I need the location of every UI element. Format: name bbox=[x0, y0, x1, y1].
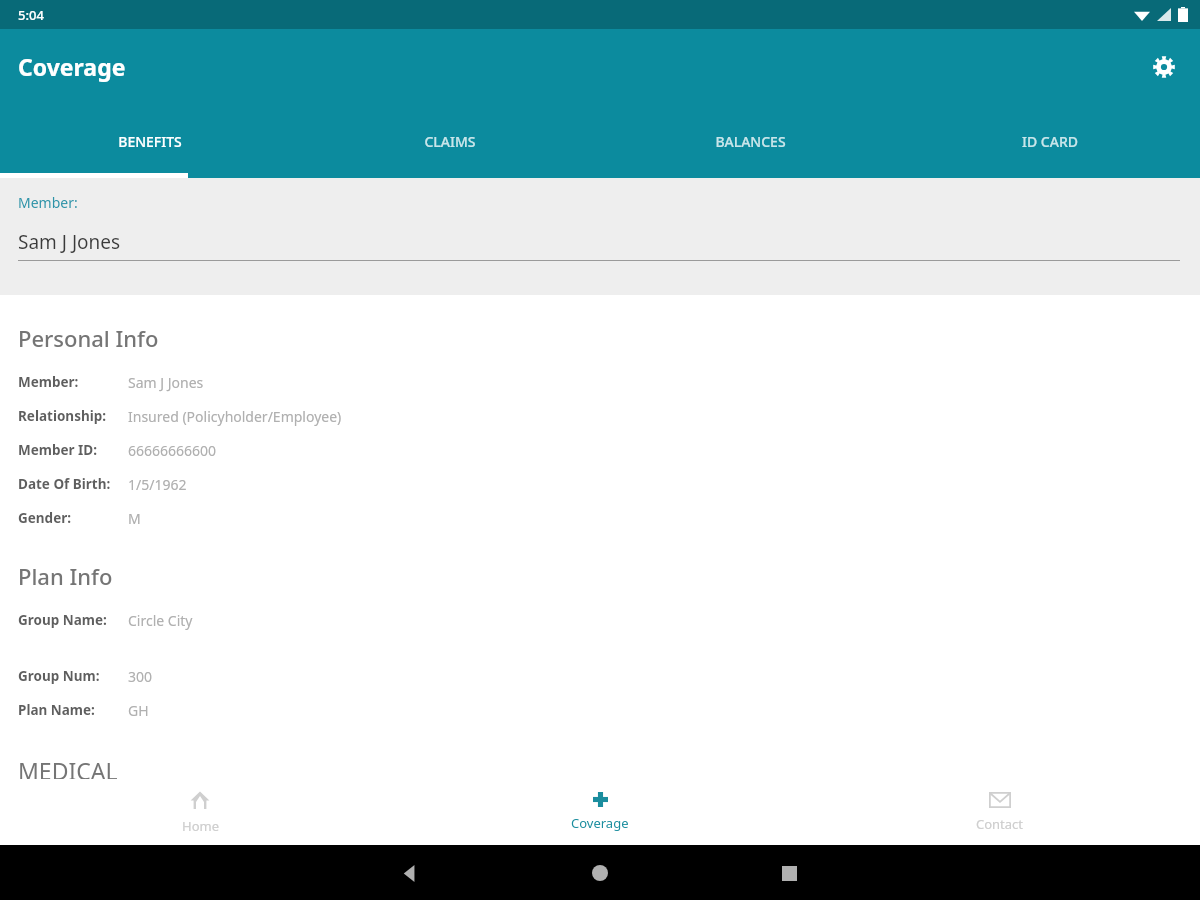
staticText: Home bbox=[182, 817, 219, 835]
staticText: Sam J Jones bbox=[128, 373, 204, 392]
staticText: 5:04 bbox=[18, 6, 44, 24]
staticText: Coverage bbox=[571, 814, 629, 832]
button[interactable]: Home bbox=[584, 857, 616, 889]
staticText: Member: bbox=[18, 373, 79, 391]
staticText: Relationship: bbox=[18, 407, 107, 425]
staticText: BENEFITS bbox=[118, 132, 182, 151]
button[interactable]: Settings bbox=[1142, 45, 1186, 89]
button[interactable]: Recent apps bbox=[773, 857, 805, 889]
staticText: Plan Info bbox=[18, 561, 113, 591]
button[interactable]: Back bbox=[392, 857, 424, 889]
staticText: M bbox=[128, 509, 141, 528]
staticText: 1/5/1962 bbox=[128, 475, 187, 494]
staticText: Insured (Policyholder/Employee) bbox=[128, 407, 342, 426]
staticText: MEDICAL bbox=[18, 755, 118, 779]
staticText: Sam J Jones bbox=[18, 229, 121, 255]
staticText: Coverage bbox=[18, 51, 126, 82]
staticText: ID CARD bbox=[1022, 132, 1078, 151]
button[interactable]: Home bbox=[0, 779, 400, 845]
button[interactable]: Contact bbox=[800, 779, 1200, 845]
button[interactable]: Sam J Jones bbox=[18, 229, 1180, 261]
button[interactable]: BALANCES bbox=[600, 104, 900, 178]
staticText: 300 bbox=[128, 667, 153, 686]
button[interactable]: BENEFITS bbox=[0, 104, 300, 178]
staticText: Group Name: bbox=[18, 611, 107, 629]
button[interactable]: ID CARD bbox=[900, 104, 1200, 178]
staticText: BALANCES bbox=[715, 132, 786, 151]
staticText: Date Of Birth: bbox=[18, 475, 111, 493]
staticText: GH bbox=[128, 701, 149, 720]
staticText: Gender: bbox=[18, 509, 72, 527]
staticText: Personal Info bbox=[18, 323, 159, 353]
button[interactable]: Coverage bbox=[400, 779, 800, 845]
staticText: Contact bbox=[976, 815, 1024, 833]
staticText: 66666666600 bbox=[128, 441, 217, 460]
staticText: Member ID: bbox=[18, 441, 98, 459]
staticText: Group Num: bbox=[18, 667, 100, 685]
staticText: Plan Name: bbox=[18, 701, 95, 719]
staticText: CLAIMS bbox=[424, 132, 476, 151]
button[interactable]: CLAIMS bbox=[300, 104, 600, 178]
staticText: Circle City bbox=[128, 611, 193, 630]
staticText: Member: bbox=[18, 193, 78, 212]
